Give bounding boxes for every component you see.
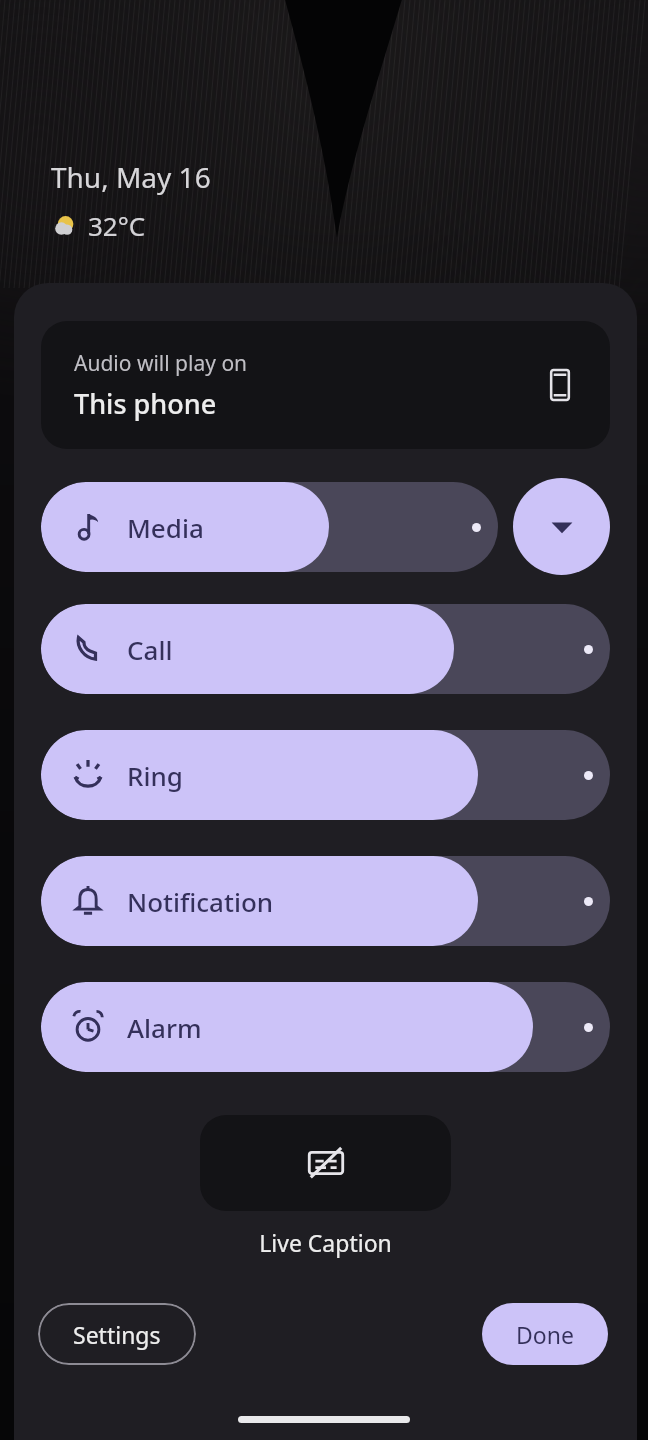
button[interactable]: Settings [38, 1303, 196, 1365]
staticText: Alarm [127, 1010, 202, 1045]
button[interactable]: Call [41, 604, 610, 694]
button[interactable]: Audio will play on [41, 321, 610, 449]
button[interactable]: Notification [41, 856, 610, 946]
staticText: Live Caption [259, 1227, 392, 1258]
staticText: Audio will play on [74, 349, 248, 378]
staticText: Call [127, 632, 173, 667]
staticText: Media [127, 510, 204, 545]
staticText: This phone [74, 385, 217, 422]
button[interactable]: Done [482, 1303, 608, 1365]
staticText: 32°C [88, 208, 146, 243]
button[interactable]: Media [41, 482, 498, 572]
button[interactable]: Live Caption [200, 1115, 451, 1211]
staticText: Ring [127, 758, 183, 793]
button[interactable]: Alarm [41, 982, 610, 1072]
button[interactable]: Ring [41, 730, 610, 820]
staticText: Thu, May 16 [51, 158, 211, 196]
button[interactable]: Expand output options [513, 478, 610, 575]
staticText: Done [516, 1319, 574, 1350]
staticText: Settings [73, 1319, 161, 1350]
staticText: Notification [127, 884, 274, 919]
